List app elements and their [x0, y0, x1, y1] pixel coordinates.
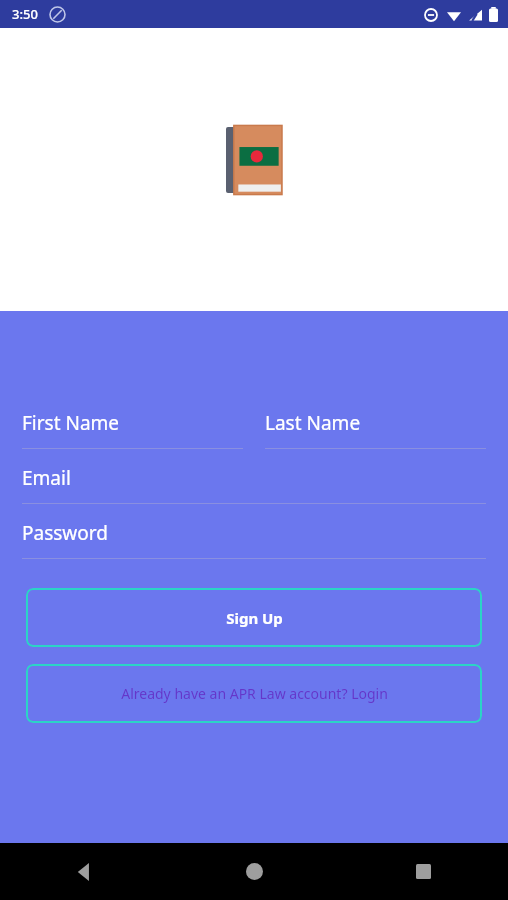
button[interactable]: Back	[0, 843, 170, 900]
staticText: Sign Up	[226, 608, 283, 628]
staticText: Already have an APR Law account? Login	[121, 684, 388, 703]
button[interactable]: Password	[22, 520, 486, 559]
staticText: 3:50	[12, 5, 38, 23]
button[interactable]: Last Name	[265, 410, 486, 449]
button[interactable]: Recent apps	[339, 843, 508, 900]
staticText: Email	[22, 465, 71, 491]
button[interactable]: Home	[170, 843, 339, 900]
staticText: Password	[22, 520, 108, 546]
staticText: First Name	[22, 410, 120, 436]
button[interactable]: Email	[22, 465, 486, 504]
button[interactable]: Sign Up	[26, 588, 482, 647]
staticText: Last Name	[265, 410, 361, 436]
button[interactable]: First Name	[22, 410, 243, 449]
button[interactable]: Already have an APR Law account? Login	[26, 664, 482, 723]
